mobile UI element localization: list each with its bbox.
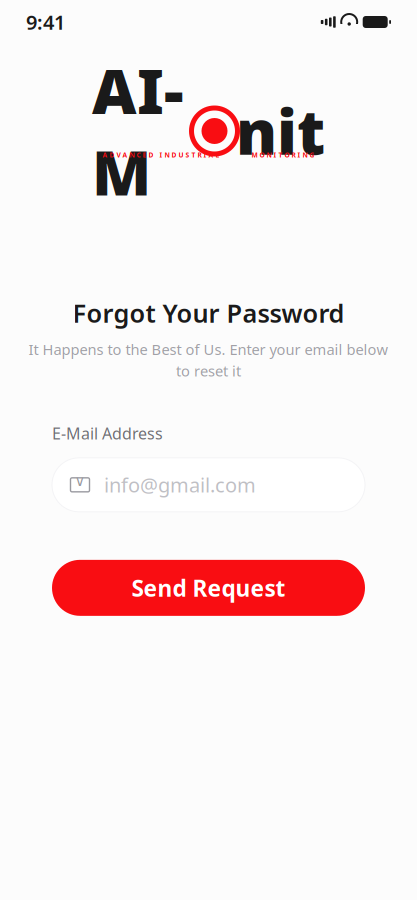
- button[interactable]: ∨: [52, 458, 365, 512]
- staticText: 9:41: [26, 9, 65, 35]
- staticText: info@gmail.com: [104, 472, 256, 498]
- button[interactable]: Send Request: [52, 560, 365, 616]
- staticText: E-Mail Address: [52, 423, 163, 444]
- staticText: ∨: [74, 472, 85, 489]
- staticText: It Happens to the Best of Us. Enter your…: [28, 340, 388, 359]
- staticText: A D V A N C E D I N D U S T R I A L: [102, 151, 219, 159]
- staticText: M O N I T O R I N G: [251, 151, 314, 159]
- staticText: AIM: [92, 50, 184, 212]
- staticText: to reset it: [176, 361, 241, 381]
- staticText: Send Request: [131, 573, 285, 603]
- staticText: nit: [236, 90, 325, 172]
- staticText: Forgot Your Password: [72, 296, 344, 330]
